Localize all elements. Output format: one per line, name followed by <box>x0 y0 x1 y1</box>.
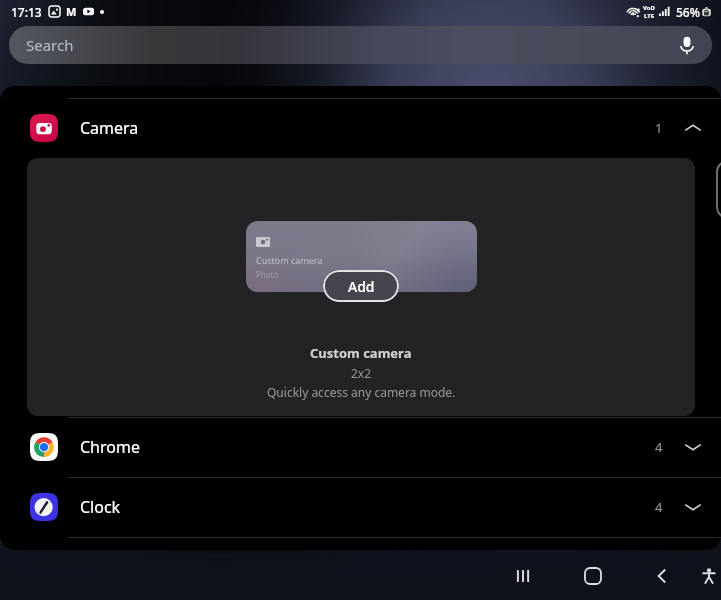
button[interactable]: Back <box>640 554 684 598</box>
staticText: 17:13 <box>11 4 42 20</box>
button[interactable]: Accessibility <box>687 554 721 598</box>
staticText: Chrome <box>80 436 140 458</box>
staticText: Quickly access any camera mode. <box>267 384 456 400</box>
staticText: Add <box>348 277 375 296</box>
staticText: 4 <box>655 438 663 456</box>
staticText: Custom camera <box>310 344 412 362</box>
button[interactable]: Clock <box>0 477 721 537</box>
button[interactable]: Chrome <box>0 417 721 477</box>
button[interactable]: Add <box>323 270 399 302</box>
staticText: 1 <box>655 119 663 137</box>
staticText: Search <box>26 35 74 55</box>
staticText: Photo <box>256 269 279 280</box>
staticText: M <box>66 4 77 19</box>
button[interactable]: Camera <box>0 98 721 158</box>
staticText: 4 <box>655 498 663 516</box>
button[interactable]: Home <box>571 554 615 598</box>
button[interactable]: Voice search <box>676 34 698 56</box>
staticText: Clock <box>80 496 121 518</box>
staticText: 2x2 <box>351 365 372 381</box>
staticText: VoD <box>643 4 655 12</box>
button[interactable]: Search <box>9 26 712 64</box>
staticText: Custom camera <box>256 254 323 266</box>
staticText: LTE <box>644 12 655 20</box>
staticText: Camera <box>80 117 139 139</box>
button[interactable]: Recent apps <box>501 554 545 598</box>
staticText: 56% <box>676 4 700 20</box>
